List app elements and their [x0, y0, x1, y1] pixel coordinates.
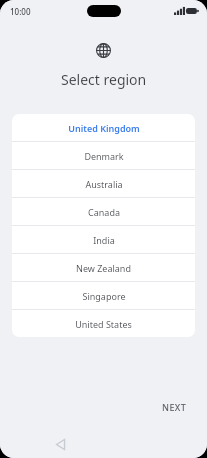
other: Globe	[96, 43, 111, 58]
staticText: United Kingdom	[68, 122, 140, 134]
button[interactable]: United Kingdom	[12, 114, 195, 141]
button[interactable]: New Zealand	[12, 254, 195, 281]
staticText: Canada	[88, 206, 120, 218]
staticText: Denmark	[84, 150, 124, 162]
button[interactable]: Australia	[12, 170, 195, 197]
button[interactable]: Back	[37, 430, 83, 458]
button[interactable]: Singapore	[12, 282, 195, 309]
staticText: Australia	[85, 178, 123, 190]
button[interactable]: Canada	[12, 198, 195, 225]
staticText: United States	[75, 318, 132, 330]
button[interactable]: United States	[12, 310, 195, 337]
button[interactable]: NEXT	[154, 396, 195, 418]
staticText: India	[93, 234, 115, 246]
button[interactable]: India	[12, 226, 195, 253]
button[interactable]: Denmark	[12, 142, 195, 169]
staticText: 10:00	[10, 6, 31, 17]
staticText: New Zealand	[76, 262, 131, 274]
staticText: Select region	[61, 70, 147, 89]
staticText: Singapore	[82, 290, 126, 302]
staticText: NEXT	[162, 401, 187, 413]
